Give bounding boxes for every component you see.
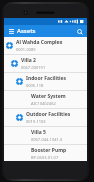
button[interactable]: Outdoor Facilities (4, 109, 87, 126)
staticText: 0019-1103 (26, 119, 46, 124)
staticText: 0067-030191 (21, 65, 46, 70)
staticText: 0067-044-1041-0 (31, 137, 63, 142)
button[interactable]: Villa 5 (4, 127, 87, 144)
staticText: Villa 2 (21, 57, 36, 64)
button[interactable]: Search (75, 27, 84, 36)
staticText: Indoor Facilities (26, 75, 67, 82)
button[interactable]: Villa 2 (4, 55, 87, 72)
button[interactable]: Booster Pump (4, 145, 87, 161)
button[interactable]: Al Wahda Complex (4, 37, 87, 54)
staticText: Assets (17, 27, 36, 35)
staticText: Water System (31, 93, 66, 100)
button[interactable]: Indoor Facilities (4, 73, 87, 90)
staticText: Villa 5 (31, 129, 46, 136)
staticText: AIC10402462 (31, 101, 56, 106)
staticText: Outdoor Facilities (26, 111, 71, 118)
staticText: Booster Pump (31, 147, 67, 154)
staticText: 0005-118 (26, 83, 44, 88)
button[interactable]: Open navigation menu (7, 27, 15, 35)
staticText: BP-0603-01-07 (31, 155, 59, 160)
button[interactable]: Water System (4, 91, 87, 108)
staticText: Al Wahda Complex (16, 39, 63, 46)
staticText: 0001-0289 (16, 47, 36, 52)
